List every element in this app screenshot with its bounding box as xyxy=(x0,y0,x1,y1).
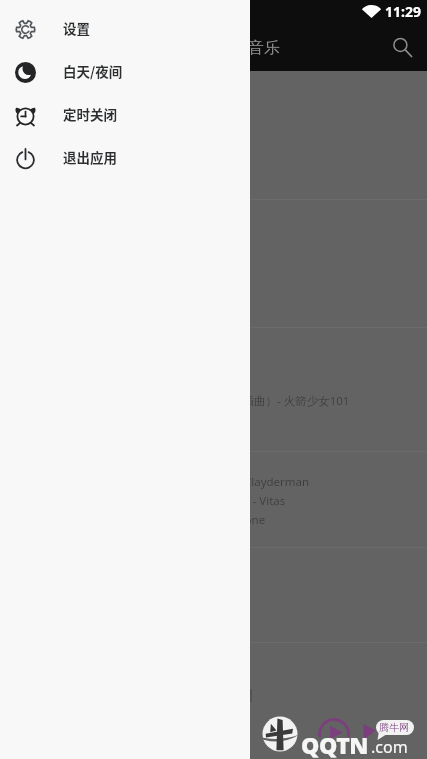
staticText: .com xyxy=(371,736,408,758)
staticText: 设置 xyxy=(63,18,90,38)
staticText: 梦中的婚礼 - Richard Clayderman xyxy=(133,474,310,490)
button[interactable]: 定时关闭 xyxy=(0,91,250,134)
staticText: 歌剧2 - Vitas xyxy=(220,493,286,509)
staticText: 卡路里（《西虹市首富》插曲）- 火箭少女101 xyxy=(116,393,350,409)
button[interactable]: 设置 xyxy=(0,5,250,48)
staticText: 定时关闭 xyxy=(63,104,117,124)
staticText: 白天/夜间 xyxy=(63,61,123,81)
staticText: QQTN xyxy=(301,729,369,759)
staticText: 11:29 xyxy=(385,2,421,21)
staticText: 腾牛网 xyxy=(379,721,409,734)
button[interactable]: 退出应用 xyxy=(0,134,250,177)
staticText: 安静 - Jay Chou - Alone xyxy=(145,512,266,528)
button[interactable]: Search xyxy=(380,25,424,69)
button[interactable]: 白天/夜间 xyxy=(0,48,250,91)
staticText: 退出应用 xyxy=(63,147,117,167)
staticText: 在线音乐 xyxy=(216,38,280,58)
